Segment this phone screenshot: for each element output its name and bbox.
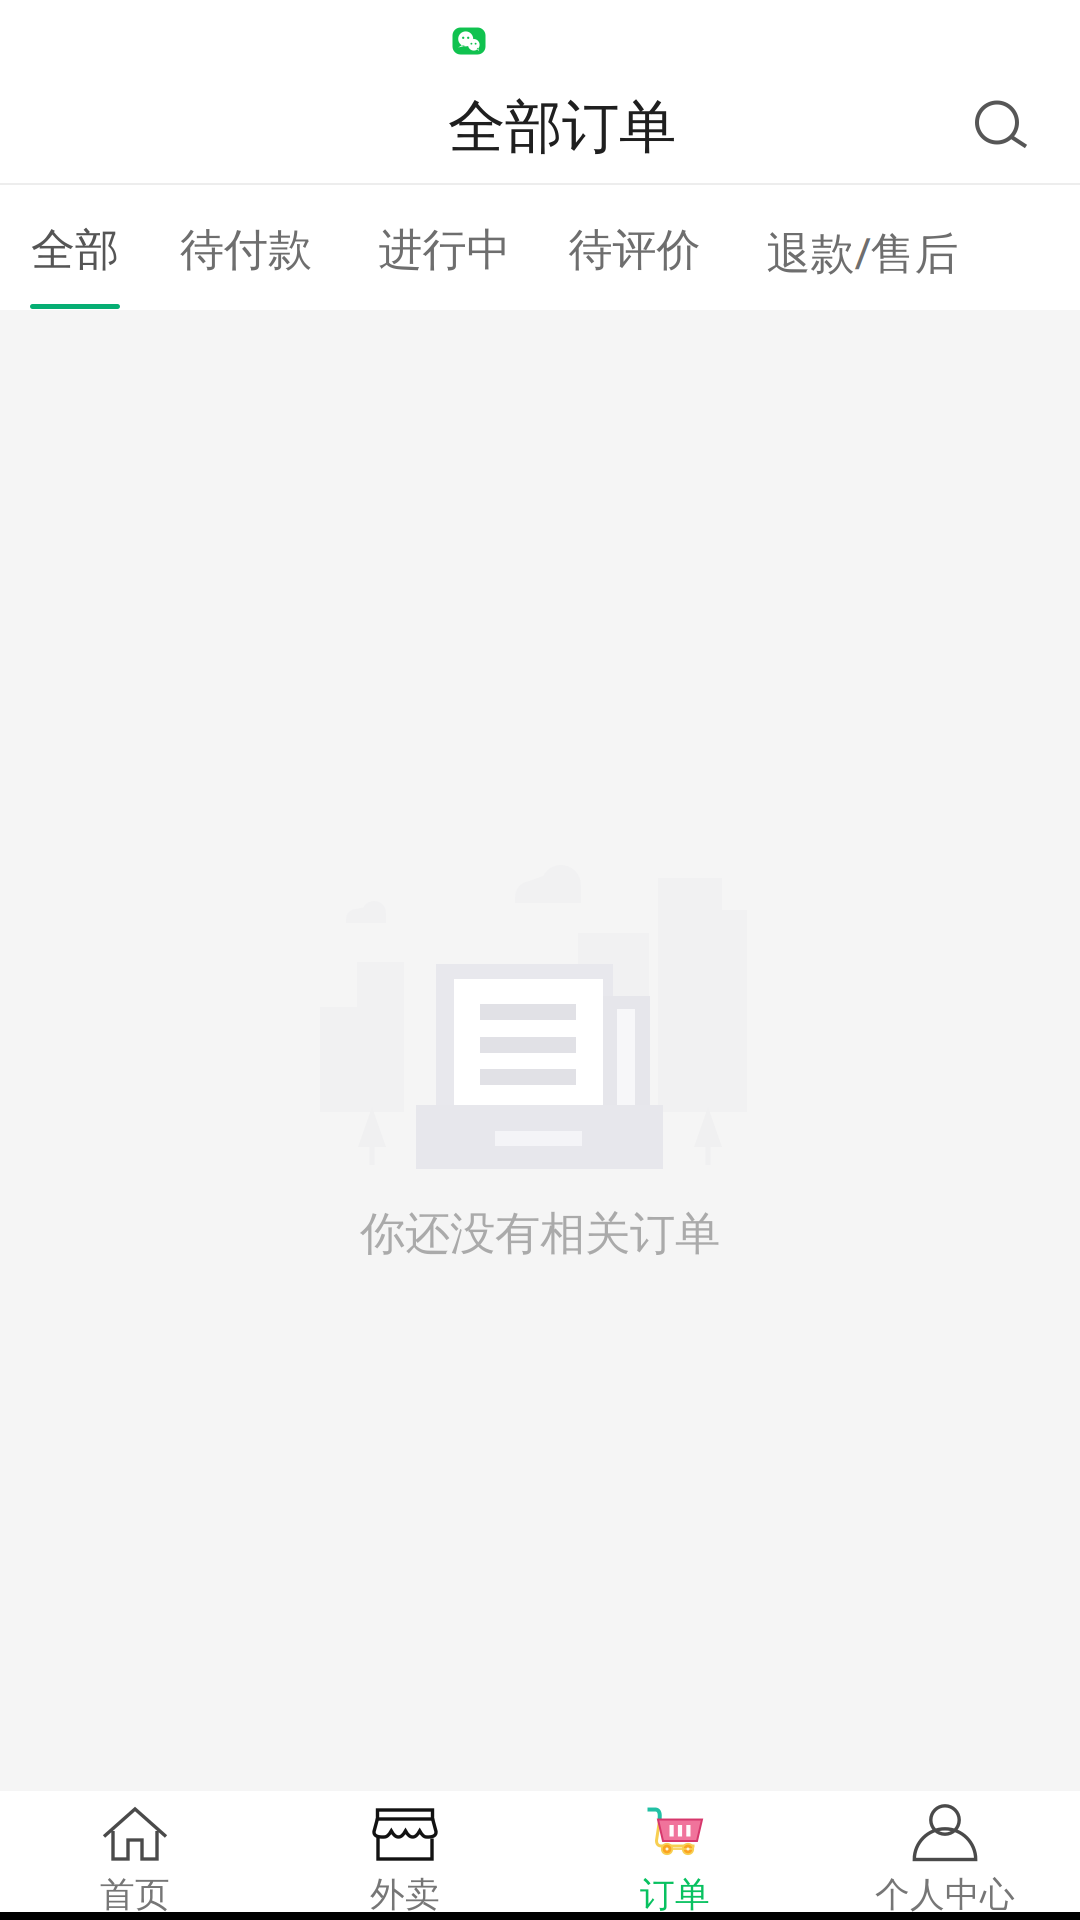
button[interactable]: 待评价 bbox=[547, 185, 722, 310]
staticText: 订单 bbox=[640, 1873, 710, 1916]
staticText: 进行中 bbox=[378, 223, 510, 277]
staticText: 全部订单 bbox=[448, 92, 676, 163]
button[interactable]: 进行中 bbox=[342, 185, 547, 310]
button[interactable]: 订单 bbox=[540, 1791, 810, 1912]
staticText: 外卖 bbox=[370, 1873, 440, 1916]
button[interactable]: 全部 bbox=[0, 185, 150, 310]
button[interactable]: 待付款 bbox=[150, 185, 342, 310]
button[interactable]: Search bbox=[954, 79, 1050, 175]
staticText: 待付款 bbox=[180, 223, 312, 277]
button[interactable]: 个人中心 bbox=[810, 1791, 1080, 1912]
staticText: 全部 bbox=[31, 223, 119, 277]
staticText: 退款/售后 bbox=[766, 223, 958, 281]
staticText: 个人中心 bbox=[875, 1873, 1015, 1916]
staticText: 待评价 bbox=[568, 223, 700, 277]
staticText: 首页 bbox=[100, 1873, 170, 1916]
button[interactable]: 退款/售后 bbox=[722, 185, 1003, 310]
button[interactable]: 外卖 bbox=[270, 1791, 540, 1912]
staticText: 你还没有相关订单 bbox=[360, 1206, 720, 1262]
button[interactable]: 首页 bbox=[0, 1791, 270, 1912]
